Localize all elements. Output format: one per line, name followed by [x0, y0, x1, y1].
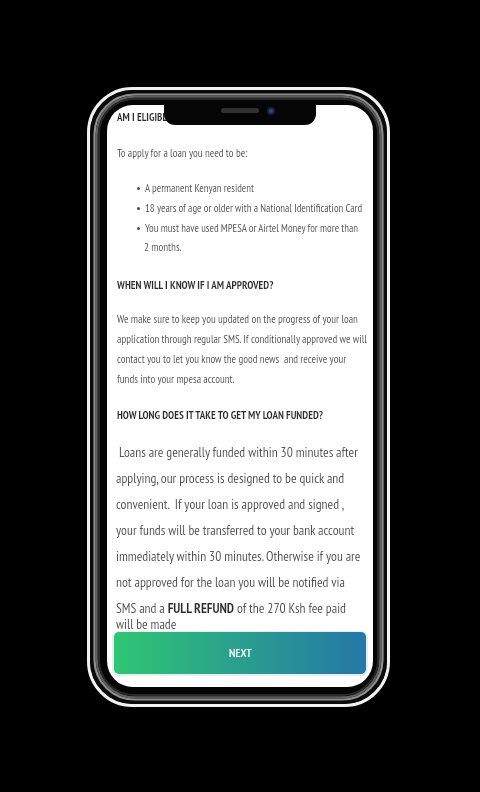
- staticText: not approved for the loan you will be no…: [116, 573, 345, 591]
- staticText: your funds will be transferred to your b…: [116, 521, 355, 539]
- staticText: funds into your mpesa account.: [117, 372, 235, 386]
- staticText: immediately within 30 minutes. Otherwise…: [116, 547, 361, 565]
- staticText: contact you to let you know the good new…: [117, 352, 347, 366]
- staticText: Loans are generally funded within 30 min…: [116, 443, 358, 461]
- staticText: will be made: [116, 615, 177, 633]
- staticText: 18 years of age or older with a National…: [145, 201, 363, 215]
- staticText: AM I ELIGIBLE?: [117, 110, 177, 124]
- staticText: WHEN WILL I KNOW IF I AM APPROVED?: [117, 278, 274, 292]
- staticText: We make sure to keep you updated on the …: [117, 312, 358, 326]
- staticText: application through regular SMS. If cond…: [117, 332, 367, 346]
- staticText: You must have used MPESA or Airtel Money…: [145, 221, 359, 235]
- staticText: applying, our process is designed to be …: [116, 469, 345, 487]
- staticText: 2 months.: [144, 240, 182, 254]
- staticText: SMS and a FULL REFUND of the 270 Ksh fee…: [116, 599, 346, 617]
- staticText: A permanent Kenyan resident: [145, 181, 254, 195]
- staticText: To apply for a loan you need to be:: [117, 146, 248, 160]
- button[interactable]: Next: [114, 632, 366, 674]
- staticText: NEXT: [229, 645, 252, 661]
- staticText: HOW LONG DOES IT TAKE TO GET MY LOAN FUN…: [117, 408, 324, 422]
- staticText: convenient. If your loan is approved and…: [116, 495, 345, 513]
- button[interactable]: AM I ELIGIBLE?: [107, 105, 373, 687]
